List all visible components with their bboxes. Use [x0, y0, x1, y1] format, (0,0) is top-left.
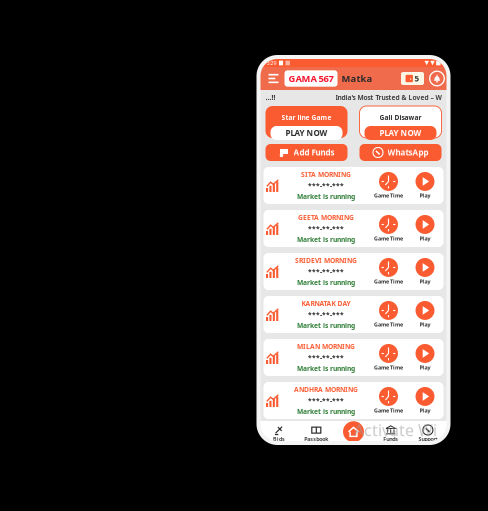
staticText: ***-**-***: [308, 267, 344, 276]
staticText: Market is running: [297, 235, 355, 244]
staticText: KARNATAK DAY: [301, 299, 350, 308]
button[interactable]: Gali Disawar: [359, 106, 441, 140]
button[interactable]: GEETA MORNING: [263, 210, 443, 247]
staticText: Support: [418, 435, 437, 443]
staticText: Market is running: [297, 192, 355, 201]
staticText: 3:29: [266, 59, 276, 67]
button[interactable]: SRIDEVI MORNING: [263, 253, 443, 290]
button[interactable]: Add Funds: [265, 144, 347, 161]
staticText: ***-**-***: [308, 396, 344, 405]
staticText: SITA MORNING: [301, 170, 351, 179]
staticText: Star line Game: [281, 113, 331, 122]
button[interactable]: Home: [335, 421, 372, 441]
button[interactable]: Funds: [372, 421, 409, 441]
staticText: Game Time: [374, 364, 403, 371]
staticText: Passbook: [304, 435, 328, 443]
staticText: Activate Wi: [354, 419, 437, 441]
staticText: PLAY NOW: [379, 128, 421, 138]
button[interactable]: Bids: [260, 421, 298, 441]
staticText: India's Most Trusted & Loved – W: [335, 93, 441, 102]
staticText: Play: [419, 192, 430, 199]
button[interactable]: Support: [409, 421, 446, 441]
staticText: GAMA 567: [288, 72, 333, 85]
staticText: SRIDEVI MORNING: [295, 256, 357, 265]
staticText: Add Funds: [293, 147, 334, 158]
button[interactable]: Star line Game: [265, 106, 347, 140]
staticText: ...!!: [265, 93, 275, 102]
staticText: ANDHRA MORNING: [294, 385, 358, 394]
staticText: ***-**-***: [308, 181, 344, 190]
staticText: PLAY NOW: [285, 128, 327, 138]
button[interactable]: SITA MORNING: [263, 167, 443, 204]
staticText: ***-**-***: [308, 310, 344, 319]
button[interactable]: Menu: [262, 68, 284, 89]
staticText: Market is running: [297, 321, 355, 330]
staticText: Market is running: [297, 278, 355, 287]
staticText: Game Time: [374, 235, 403, 242]
button[interactable]: Passbook: [298, 421, 335, 441]
staticText: Play: [419, 407, 430, 414]
staticText: ***-**-***: [308, 224, 344, 233]
staticText: GEETA MORNING: [298, 213, 354, 222]
staticText: Game Time: [374, 278, 403, 285]
staticText: Play: [419, 321, 430, 328]
staticText: Bids: [273, 435, 285, 443]
button[interactable]: WhatsApp: [359, 144, 441, 161]
staticText: Game Time: [374, 192, 403, 199]
staticText: Game Time: [374, 407, 403, 414]
staticText: Play: [419, 278, 430, 285]
staticText: WhatsApp: [387, 147, 428, 158]
staticText: Gali Disawar: [379, 113, 421, 122]
staticText: Play: [419, 235, 430, 242]
staticText: Play: [419, 364, 430, 371]
staticText: Matka: [341, 72, 372, 85]
staticText: Funds: [383, 435, 398, 443]
button[interactable]: MILAN MORNING: [263, 339, 443, 376]
button[interactable]: Wallet balance: [401, 72, 424, 85]
staticText: Game Time: [374, 321, 403, 328]
button[interactable]: ANDHRA MORNING: [263, 382, 443, 419]
staticText: ***-**-***: [308, 353, 344, 362]
staticText: 5: [414, 73, 419, 84]
button[interactable]: Notifications: [424, 71, 444, 86]
button[interactable]: KARNATAK DAY: [263, 296, 443, 333]
staticText: MILAN MORNING: [297, 342, 355, 351]
staticText: Market is running: [297, 407, 355, 416]
staticText: Market is running: [297, 364, 355, 373]
